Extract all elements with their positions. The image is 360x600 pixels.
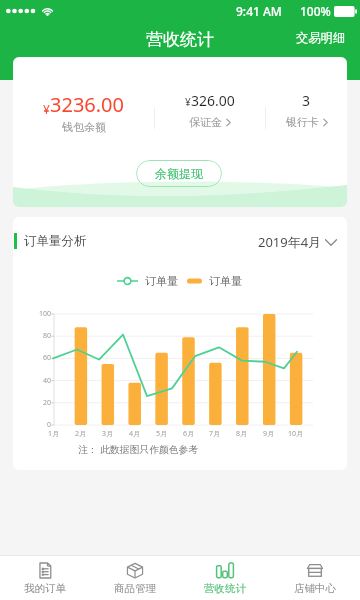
staticText: 3236.00 [50,91,124,118]
staticText: 注： 此数据图只作颜色参考 [78,443,199,456]
staticText: 60 [43,353,52,363]
button[interactable]: 营收统计 [180,556,270,595]
staticText: 7月 [209,429,221,439]
staticText: 我的订单 [24,582,66,595]
staticText: 3 [302,91,311,110]
staticText: 5月 [156,429,168,439]
staticText: ¥ [185,95,191,109]
staticText: 3月 [102,429,114,439]
staticText: 保证金 [189,115,222,129]
staticText: 20 [43,398,52,408]
staticText: 订单量分析 [24,233,87,249]
button[interactable]: 店铺中心 [270,556,360,595]
staticText: 营收统计 [204,582,246,595]
staticText: 100% [300,3,331,19]
staticText: 店铺中心 [294,582,336,595]
button[interactable]: 商品管理 [90,556,180,595]
button[interactable]: 3 [266,91,347,129]
staticText: 0 [47,420,52,430]
button[interactable]: 交易明细 [282,22,360,53]
staticText: 订单量 [145,274,178,288]
staticText: 80 [43,331,52,341]
staticText: 营收统计 [146,29,214,50]
staticText: 商品管理 [114,582,156,595]
staticText: 9月 [263,429,275,439]
staticText: ¥ [43,101,50,117]
staticText: 订单量 [209,274,242,288]
staticText: 2月 [75,429,87,439]
button[interactable]: 余额提现 [136,160,222,187]
staticText: 326.00 [191,91,235,110]
staticText: 100 [39,309,52,319]
staticText: 8月 [236,429,248,439]
staticText: 钱包余额 [62,120,106,134]
staticText: 2019年4月 [258,233,322,251]
staticText: 交易明细 [296,30,346,45]
staticText: 余额提现 [155,166,203,181]
staticText: 9:41 AM [236,3,282,19]
button[interactable]: 2019年4月 [252,227,345,257]
staticText: 6月 [183,429,195,439]
staticText: 4月 [129,429,141,439]
staticText: 银行卡 [286,115,319,129]
button[interactable]: ¥ [155,91,265,129]
staticText: 40 [43,376,52,386]
button[interactable]: ¥ [13,91,154,134]
staticText: 10月 [288,429,304,439]
button[interactable]: 我的订单 [0,556,90,595]
staticText: 1月 [48,429,60,439]
